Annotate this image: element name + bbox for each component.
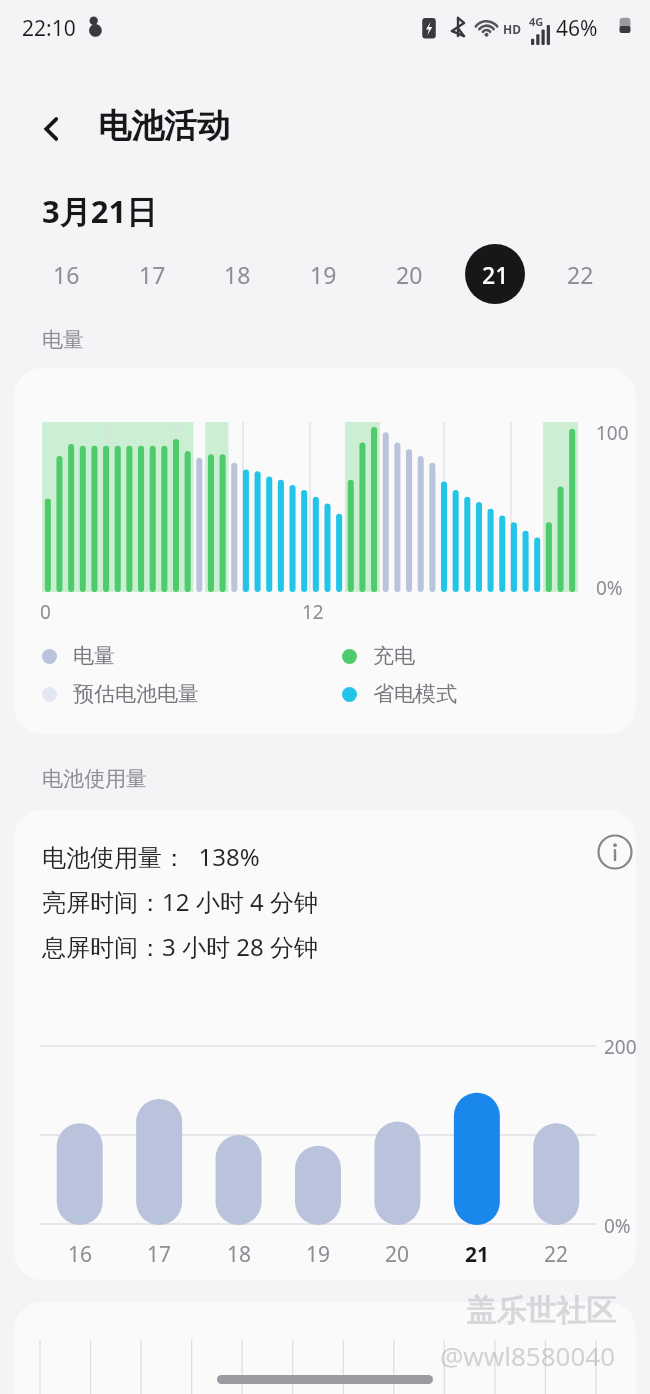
staticText: @wwl8580040 bbox=[440, 1338, 616, 1373]
staticText: 电池使用量 bbox=[42, 766, 147, 792]
button[interactable]: Info bbox=[583, 820, 636, 884]
button[interactable]: 21 bbox=[451, 1234, 503, 1274]
staticText: 16 bbox=[68, 1240, 93, 1269]
staticText: 22 bbox=[567, 259, 594, 290]
button[interactable]: 17 bbox=[122, 244, 182, 304]
staticText: 21 bbox=[465, 1240, 490, 1269]
button[interactable]: 19 bbox=[293, 244, 353, 304]
button[interactable]: 20 bbox=[379, 244, 439, 304]
staticText: 18 bbox=[224, 259, 251, 290]
staticText: 充电 bbox=[373, 643, 415, 669]
staticText: 21 bbox=[482, 259, 509, 290]
staticText: 17 bbox=[139, 259, 166, 290]
staticText: 16 bbox=[53, 259, 80, 290]
button[interactable]: 16 bbox=[54, 1234, 106, 1274]
staticText: 电量 bbox=[42, 327, 84, 353]
button[interactable]: 16 bbox=[36, 244, 96, 304]
staticText: 预估电池电量 bbox=[73, 681, 199, 707]
staticText: 22 bbox=[544, 1240, 569, 1269]
button[interactable]: 22 bbox=[550, 244, 610, 304]
staticText: 省电模式 bbox=[373, 681, 457, 707]
button[interactable]: 18 bbox=[213, 1234, 265, 1274]
staticText: HD bbox=[503, 21, 521, 37]
staticText: 20 bbox=[385, 1240, 410, 1269]
button[interactable]: 电量 bbox=[42, 643, 115, 669]
staticText: 200 bbox=[604, 1034, 636, 1060]
button[interactable]: 省电模式 bbox=[342, 681, 457, 707]
staticText: 22:10 bbox=[22, 14, 76, 43]
staticText: 19 bbox=[310, 259, 337, 290]
staticText: 46% bbox=[556, 14, 598, 43]
staticText: 17 bbox=[147, 1240, 172, 1269]
staticText: 18 bbox=[227, 1240, 252, 1269]
staticText: 0 bbox=[40, 599, 51, 625]
staticText: 盖乐世社区 bbox=[466, 1292, 616, 1330]
button[interactable]: 充电 bbox=[342, 643, 415, 669]
staticText: 3月21日 bbox=[42, 190, 158, 232]
button[interactable]: 18 bbox=[207, 244, 267, 304]
staticText: 19 bbox=[306, 1240, 331, 1269]
button[interactable]: Back bbox=[20, 97, 84, 161]
button[interactable]: 17 bbox=[133, 1234, 185, 1274]
button[interactable]: 电池使用量： 138% bbox=[14, 810, 636, 1280]
staticText: 电池活动 bbox=[98, 105, 230, 147]
staticText: 100 bbox=[596, 420, 629, 446]
button[interactable]: 20 bbox=[371, 1234, 423, 1274]
staticText: 12 bbox=[302, 599, 324, 625]
button[interactable]: 100 bbox=[14, 368, 636, 734]
button[interactable]: 预估电池电量 bbox=[42, 681, 199, 707]
staticText: 电池使用量： 138% bbox=[42, 840, 260, 873]
staticText: 0% bbox=[604, 1213, 631, 1239]
staticText: 息屏时间：3 小时 28 分钟 bbox=[42, 930, 318, 963]
button[interactable]: 19 bbox=[292, 1234, 344, 1274]
staticText: 4G bbox=[529, 14, 544, 29]
button[interactable]: 22 bbox=[530, 1234, 582, 1274]
staticText: 20 bbox=[396, 259, 423, 290]
button[interactable]: 21 bbox=[465, 244, 525, 304]
staticText: 亮屏时间：12 小时 4 分钟 bbox=[42, 885, 318, 918]
staticText: 电量 bbox=[73, 643, 115, 669]
staticText: 0% bbox=[596, 575, 623, 601]
